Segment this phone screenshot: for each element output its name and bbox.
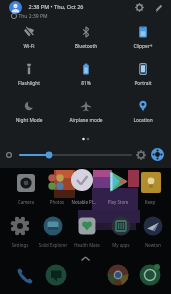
staticText: Health Mate [67,242,107,250]
button[interactable] [139,175,161,207]
button[interactable] [46,175,68,207]
staticText: Solid Explorer [33,242,73,250]
staticText: Thu 2:39 PM [13,13,53,22]
button[interactable] [119,97,167,127]
staticText: Airplane mode [63,117,109,126]
staticText: Portrait [120,80,166,89]
button[interactable] [14,265,36,289]
staticText: Location [120,117,166,126]
button[interactable] [107,175,129,207]
button[interactable] [135,3,144,12]
button[interactable] [62,60,110,90]
staticText: Night Mode [6,117,52,126]
staticText: 81% [63,80,109,89]
staticText: Camera [6,199,46,207]
button[interactable] [119,23,167,53]
button[interactable] [5,60,53,90]
button[interactable] [9,1,22,14]
button[interactable] [73,175,95,207]
button[interactable] [142,216,164,248]
button[interactable] [155,3,164,12]
button[interactable] [107,265,129,289]
staticText: Wi-Fi [6,43,52,52]
staticText: Bluetooth [63,43,109,52]
button[interactable] [151,148,164,161]
staticText: Keep [130,199,170,207]
staticText: Clipper+ [120,43,166,52]
button[interactable] [62,97,110,127]
button[interactable] [42,216,64,248]
staticText: Notable Pl... [64,199,104,207]
button[interactable] [62,23,110,53]
staticText: 2:38 PM • Thu, Oct 26 [21,3,91,13]
staticText: Play Store [98,199,138,207]
button[interactable] [0,146,134,164]
staticText: My apps [101,242,141,250]
staticText: Newton [133,242,171,250]
button[interactable] [5,97,53,127]
button[interactable] [110,216,132,248]
staticText: Settings [0,242,40,250]
button[interactable] [136,150,146,160]
button[interactable] [76,216,98,248]
button[interactable] [139,265,161,289]
button[interactable] [15,175,37,207]
button[interactable] [9,216,31,248]
button[interactable] [5,23,53,53]
button[interactable] [119,60,167,90]
staticText: Flashlight [6,80,52,89]
button[interactable] [45,265,67,289]
staticText: Photos [37,199,77,207]
